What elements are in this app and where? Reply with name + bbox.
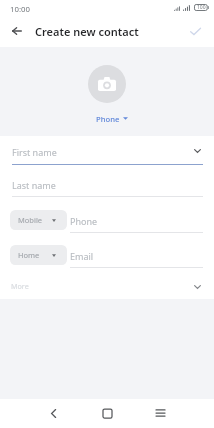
button[interactable]: Save contact (184, 20, 206, 42)
button[interactable]: Last name (0, 171, 214, 197)
staticText: Home (18, 250, 40, 260)
staticText: Last name (12, 179, 56, 191)
button[interactable]: Navigate up (5, 19, 29, 43)
button[interactable]: Recent apps (147, 400, 173, 426)
staticText: More (11, 281, 29, 291)
button[interactable]: Add photo (88, 65, 126, 103)
button[interactable]: Home (10, 245, 67, 265)
button[interactable]: Back (40, 400, 66, 426)
button[interactable]: First name (0, 138, 214, 166)
button[interactable]: More (0, 277, 214, 295)
button[interactable]: Phone (88, 111, 130, 126)
button[interactable]: Email (70, 245, 202, 264)
staticText: Create new contact (35, 24, 139, 39)
staticText: Phone (70, 215, 98, 227)
button[interactable]: Phone (70, 210, 202, 229)
staticText: First name (12, 146, 57, 158)
button[interactable]: Home (94, 400, 120, 426)
button[interactable]: Mobile (10, 210, 67, 230)
staticText: Email (70, 250, 94, 262)
staticText: Mobile (18, 215, 43, 225)
staticText: 10:00 (10, 4, 30, 15)
staticText: 100 (197, 4, 206, 11)
staticText: Phone (96, 114, 120, 124)
